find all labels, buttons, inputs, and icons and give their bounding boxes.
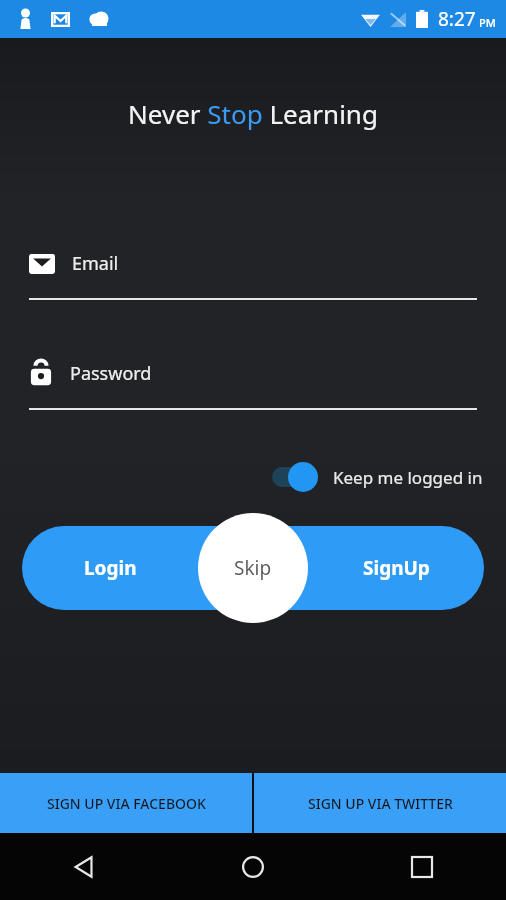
staticText: Email	[72, 251, 119, 276]
button[interactable]: SIGN UP VIA FACEBOOK	[0, 773, 252, 833]
staticText: Skip	[234, 555, 272, 581]
staticText: PM	[479, 15, 496, 30]
button[interactable]: Email	[29, 251, 477, 300]
staticText: Keep me logged in	[333, 466, 483, 489]
button[interactable]: SIGN UP VIA TWITTER	[254, 773, 506, 833]
button[interactable]: Password	[29, 360, 477, 410]
button[interactable]: Back	[0, 833, 168, 900]
staticText: SignUp	[363, 555, 430, 581]
staticText: Never Stop Learning	[128, 96, 378, 131]
button[interactable]: Skip	[198, 513, 308, 623]
button[interactable]: Keep me logged in	[268, 458, 485, 496]
button[interactable]: SignUp	[308, 526, 484, 610]
staticText: Login	[84, 555, 137, 581]
staticText: SIGN UP VIA FACEBOOK	[47, 794, 206, 813]
button[interactable]: Recent apps	[337, 833, 506, 900]
staticText: Password	[70, 361, 152, 386]
button[interactable]: Login	[22, 526, 198, 610]
staticText: 8:27	[438, 6, 476, 32]
staticText: SIGN UP VIA TWITTER	[308, 794, 453, 813]
button[interactable]: Home	[168, 833, 337, 900]
